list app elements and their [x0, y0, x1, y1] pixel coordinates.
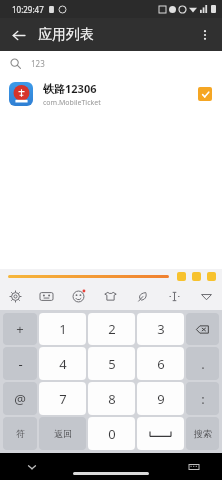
staticText: 搜索 [194, 428, 212, 439]
button[interactable]: Switch keyboard [184, 457, 204, 477]
button[interactable]: Selected [198, 87, 212, 101]
button[interactable]: 搜索 [186, 417, 219, 450]
button[interactable]: . [186, 347, 219, 380]
button[interactable]: 符 [3, 417, 37, 450]
staticText: @ [14, 390, 26, 408]
staticText: com.MobileTicket [43, 98, 101, 108]
button[interactable]: Hide keyboard [22, 457, 42, 477]
button[interactable]: 0 [88, 417, 135, 450]
button[interactable]: 3 [137, 313, 184, 345]
staticText: 9 [157, 390, 165, 408]
button[interactable]: @ [3, 382, 37, 415]
button[interactable]: Suggestion [192, 272, 201, 281]
button[interactable]: Emoji [62, 283, 94, 310]
staticText: . [201, 355, 205, 373]
staticText: 0 [108, 425, 116, 443]
button[interactable]: + [3, 313, 37, 345]
button[interactable]: 4 [39, 347, 86, 380]
staticText: 4 [59, 355, 67, 373]
button[interactable]: Suggestion [207, 272, 216, 281]
button[interactable]: Cursor [158, 283, 190, 310]
staticText: 返回 [54, 428, 72, 439]
staticText: + [16, 320, 24, 338]
staticText: 7 [59, 390, 67, 408]
staticText: 应用列表 [38, 26, 94, 44]
button[interactable]: 1 [39, 313, 86, 345]
staticText: - [18, 355, 23, 373]
button[interactable]: Keyboard layout [31, 283, 62, 310]
staticText: 3 [157, 320, 165, 338]
button[interactable]: - [3, 347, 37, 380]
button[interactable]: Hide [190, 283, 222, 310]
staticText: 123 [31, 58, 45, 69]
staticText: 8 [108, 390, 116, 408]
button[interactable]: 8 [88, 382, 135, 415]
button[interactable]: 2 [88, 313, 135, 345]
staticText: 铁路12306 [43, 81, 97, 96]
button[interactable]: 123 [0, 51, 222, 75]
staticText: 符 [16, 428, 25, 439]
button[interactable]: 铁路12306 [0, 75, 222, 113]
button[interactable]: Backspace [186, 313, 219, 345]
staticText: 10:29:47 [12, 4, 44, 15]
staticText: : [201, 390, 205, 408]
staticText: 5 [108, 355, 116, 373]
button[interactable]: Space [137, 417, 184, 450]
button[interactable]: 7 [39, 382, 86, 415]
button[interactable]: Theme [94, 283, 126, 310]
button[interactable]: 返回 [39, 417, 86, 450]
button[interactable]: : [186, 382, 219, 415]
button[interactable]: 5 [88, 347, 135, 380]
staticText: 6 [157, 355, 165, 373]
button[interactable]: Back [4, 21, 32, 49]
button[interactable]: Suggestion [177, 272, 186, 281]
button[interactable]: More options [191, 21, 219, 49]
button[interactable]: 9 [137, 382, 184, 415]
button[interactable]: Settings [0, 283, 31, 310]
staticText: 1 [59, 320, 67, 338]
button[interactable]: 6 [137, 347, 184, 380]
button[interactable]: Handwriting [126, 283, 158, 310]
staticText: 2 [108, 320, 116, 338]
